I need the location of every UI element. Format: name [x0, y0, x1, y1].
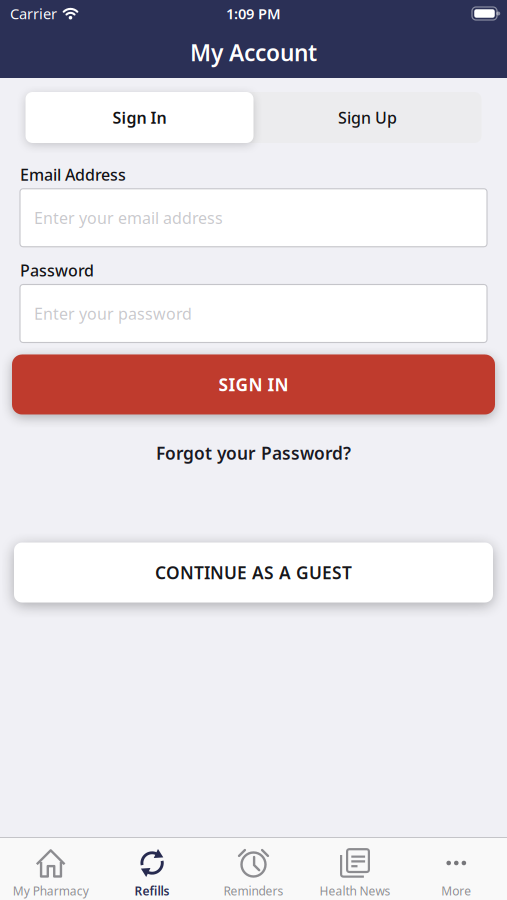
- staticText: Refills: [135, 883, 170, 899]
- button[interactable]: Reminders: [203, 848, 304, 899]
- button[interactable]: My Pharmacy: [0, 848, 101, 899]
- staticText: Reminders: [223, 883, 283, 899]
- staticText: Sign Up: [338, 107, 397, 128]
- staticText: Forgot your Password?: [156, 441, 351, 464]
- button[interactable]: SIGN IN: [0, 354, 507, 414]
- staticText: 1:09 PM: [226, 4, 281, 23]
- button[interactable]: Sign In: [25, 92, 253, 143]
- staticText: Password: [20, 260, 94, 281]
- staticText: CONTINUE AS A GUEST: [155, 561, 352, 584]
- button[interactable]: Password: [20, 284, 487, 342]
- staticText: Enter your password: [34, 303, 192, 324]
- button[interactable]: More: [406, 848, 507, 899]
- button[interactable]: Sign Up: [253, 92, 481, 143]
- staticText: Health News: [319, 883, 390, 899]
- button[interactable]: CONTINUE AS A GUEST: [0, 542, 507, 602]
- button[interactable]: Refills: [101, 848, 203, 899]
- button[interactable]: Email Address: [20, 189, 487, 247]
- button[interactable]: Forgot your Password?: [156, 441, 351, 464]
- staticText: Email Address: [20, 164, 126, 185]
- staticText: Enter your email address: [34, 207, 223, 228]
- staticText: Sign In: [112, 107, 166, 128]
- staticText: My Account: [190, 37, 317, 67]
- staticText: My Pharmacy: [13, 883, 89, 899]
- staticText: More: [441, 883, 471, 899]
- staticText: SIGN IN: [218, 373, 288, 396]
- staticText: Carrier: [10, 4, 57, 23]
- button[interactable]: Health News: [304, 848, 406, 899]
